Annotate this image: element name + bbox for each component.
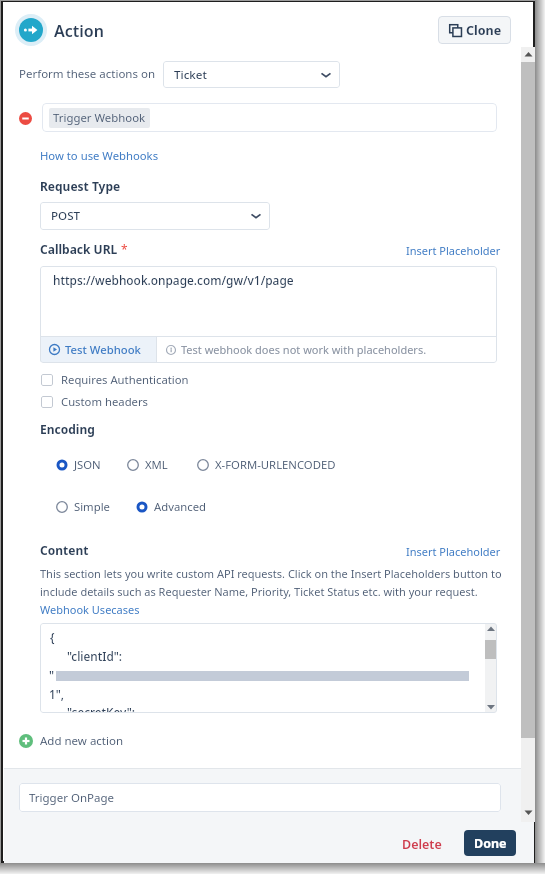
- staticText: "clientId":: [67, 648, 122, 664]
- staticText: "secretKey":: [67, 704, 136, 713]
- staticText: 1",: [49, 686, 65, 702]
- button[interactable]: Action: [15, 14, 47, 46]
- button[interactable]: Trigger Webhook: [42, 103, 497, 132]
- staticText: Add new action: [40, 733, 124, 749]
- staticText: JSON: [74, 457, 101, 472]
- button[interactable]: Remove action: [19, 112, 32, 125]
- staticText: Delete: [402, 836, 442, 853]
- staticText: This section lets you write custom API r…: [40, 566, 502, 599]
- staticText: Advanced: [154, 499, 206, 514]
- staticText: POST: [51, 208, 81, 224]
- staticText: ": [49, 667, 55, 683]
- staticText: Clone: [466, 22, 502, 39]
- button[interactable]: JSON: [56, 457, 101, 472]
- staticText: Requires Authentication: [61, 372, 189, 387]
- button[interactable]: Simple: [56, 499, 110, 514]
- button[interactable]: Requires Authentication: [41, 372, 189, 387]
- staticText: Callback URL: [40, 241, 118, 257]
- staticText: X-FORM-URLENCODED: [215, 457, 336, 472]
- staticText: Trigger Webhook: [53, 110, 146, 126]
- button[interactable]: Add new action: [19, 733, 124, 749]
- staticText: *: [118, 241, 128, 257]
- button[interactable]: POST: [40, 202, 270, 230]
- staticText: https://webhook.onpage.com/gw/v1/page: [53, 272, 294, 288]
- button[interactable]: How to use Webhooks: [40, 148, 159, 163]
- staticText: Encoding: [40, 421, 95, 437]
- staticText: XML: [145, 457, 168, 472]
- staticText: {: [50, 629, 55, 645]
- staticText: Content: [40, 542, 89, 558]
- staticText: Done: [474, 835, 507, 852]
- staticText: Test Webhook: [65, 342, 141, 357]
- staticText: Perform these actions on: [19, 66, 156, 82]
- button[interactable]: Insert Placeholder: [406, 544, 501, 559]
- button[interactable]: Test Webhook: [40, 337, 156, 362]
- button[interactable]: Advanced: [136, 499, 206, 514]
- button[interactable]: Clone: [438, 16, 511, 44]
- staticText: Trigger OnPage: [29, 790, 114, 806]
- button[interactable]: Trigger OnPage: [19, 783, 501, 812]
- button[interactable]: Ticket: [163, 61, 340, 88]
- button[interactable]: XML: [127, 457, 168, 472]
- button[interactable]: Delete: [398, 832, 446, 857]
- button[interactable]: Webhook Usecases: [40, 602, 140, 617]
- button[interactable]: Done: [464, 830, 516, 856]
- button[interactable]: X-FORM-URLENCODED: [197, 457, 336, 472]
- staticText: Ticket: [174, 67, 207, 83]
- staticText: Action: [54, 20, 104, 42]
- staticText: Custom headers: [61, 394, 149, 409]
- staticText: Test webhook does not work with placehol…: [181, 342, 427, 357]
- button[interactable]: Custom headers: [41, 394, 149, 409]
- staticText: Request Type: [40, 178, 121, 194]
- staticText: Simple: [74, 499, 110, 514]
- button[interactable]: Insert Placeholder: [406, 243, 501, 258]
